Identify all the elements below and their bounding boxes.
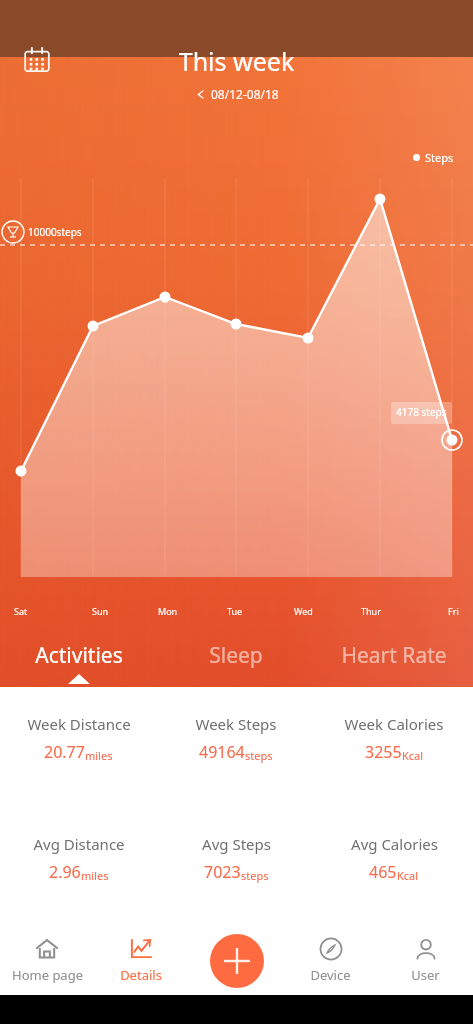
button[interactable]: Week Calories [315, 714, 473, 763]
staticText: Device [310, 966, 351, 984]
button[interactable]: Home page [0, 925, 94, 995]
staticText: 465 [369, 861, 397, 883]
button[interactable]: Week Steps [157, 714, 315, 763]
staticText: Wed [294, 605, 313, 617]
staticText: 2.96 [49, 861, 81, 883]
button[interactable]: Calendar [21, 44, 53, 76]
staticText: steps [241, 868, 269, 883]
staticText: 4178 steps [396, 405, 447, 419]
staticText: miles [85, 748, 113, 763]
staticText: Avg Calories [351, 834, 438, 854]
button[interactable]: User [378, 925, 473, 995]
button[interactable]: Avg Steps [157, 834, 315, 883]
staticText: 7023 [204, 861, 241, 883]
staticText: 08/12-08/18 [211, 86, 279, 102]
staticText: steps [245, 748, 273, 763]
button[interactable]: 08/12-08/18 [195, 86, 279, 102]
staticText: Sat [14, 605, 28, 617]
staticText: Details [120, 966, 162, 984]
staticText: Steps [425, 150, 454, 165]
button[interactable]: Activities [0, 641, 157, 684]
staticText: Week Distance [27, 714, 131, 734]
button[interactable]: Details [94, 925, 188, 995]
staticText: Heart Rate [341, 641, 447, 670]
staticText: Week Calories [344, 714, 444, 734]
staticText: Tue [227, 605, 243, 617]
button[interactable]: Week Distance [0, 714, 157, 763]
button[interactable]: Heart Rate [315, 641, 473, 684]
staticText: Thur [361, 605, 381, 617]
staticText: Kcal [402, 748, 424, 763]
button[interactable]: Sleep [157, 641, 315, 684]
button[interactable]: Avg Calories [315, 834, 473, 883]
staticText: Fri [448, 605, 459, 617]
staticText: Home page [12, 966, 83, 984]
staticText: Kcal [397, 868, 419, 883]
staticText: This week [0, 44, 473, 78]
staticText: Avg Steps [202, 834, 271, 854]
staticText: Week Steps [195, 714, 277, 734]
staticText: 20.77 [44, 741, 85, 763]
staticText: 3255 [365, 741, 402, 763]
staticText: Sun [92, 605, 109, 617]
staticText: 49164 [199, 741, 245, 763]
button[interactable]: Avg Distance [0, 834, 157, 883]
staticText: User [411, 966, 440, 984]
button[interactable]: Device [283, 925, 378, 995]
staticText: Sleep [209, 641, 263, 670]
staticText: Activities [35, 641, 123, 670]
staticText: Avg Distance [33, 834, 125, 854]
button[interactable]: Add [210, 934, 264, 988]
staticText: miles [81, 868, 109, 883]
staticText: Mon [158, 605, 178, 617]
staticText: 10000steps [28, 225, 82, 239]
